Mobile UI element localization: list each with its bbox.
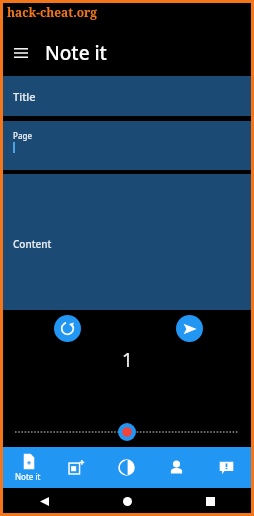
- button[interactable]: Page: [3, 121, 251, 170]
- button[interactable]: Refresh: [54, 315, 81, 342]
- button[interactable]: Menu: [3, 35, 39, 71]
- button[interactable]: Back: [32, 489, 56, 513]
- button[interactable]: Title: [3, 76, 251, 116]
- button[interactable]: Content: [3, 174, 251, 310]
- staticText: Title: [13, 89, 36, 104]
- staticText: Note it: [15, 471, 41, 482]
- button[interactable]: Slider: [3, 421, 251, 443]
- button[interactable]: Recents: [198, 489, 222, 513]
- button[interactable]: Send: [176, 315, 203, 342]
- staticText: Note it: [45, 40, 107, 66]
- staticText: Content: [13, 237, 52, 251]
- staticText: Page: [13, 130, 33, 141]
- button[interactable]: Note it: [3, 447, 52, 488]
- staticText: hack-cheat.org: [7, 4, 98, 20]
- button[interactable]: Theme: [101, 447, 151, 488]
- button[interactable]: Feedback: [201, 447, 251, 488]
- button[interactable]: Account: [151, 447, 201, 488]
- button[interactable]: Home: [115, 489, 139, 513]
- staticText: 1: [122, 347, 133, 373]
- button[interactable]: New page: [52, 447, 101, 488]
